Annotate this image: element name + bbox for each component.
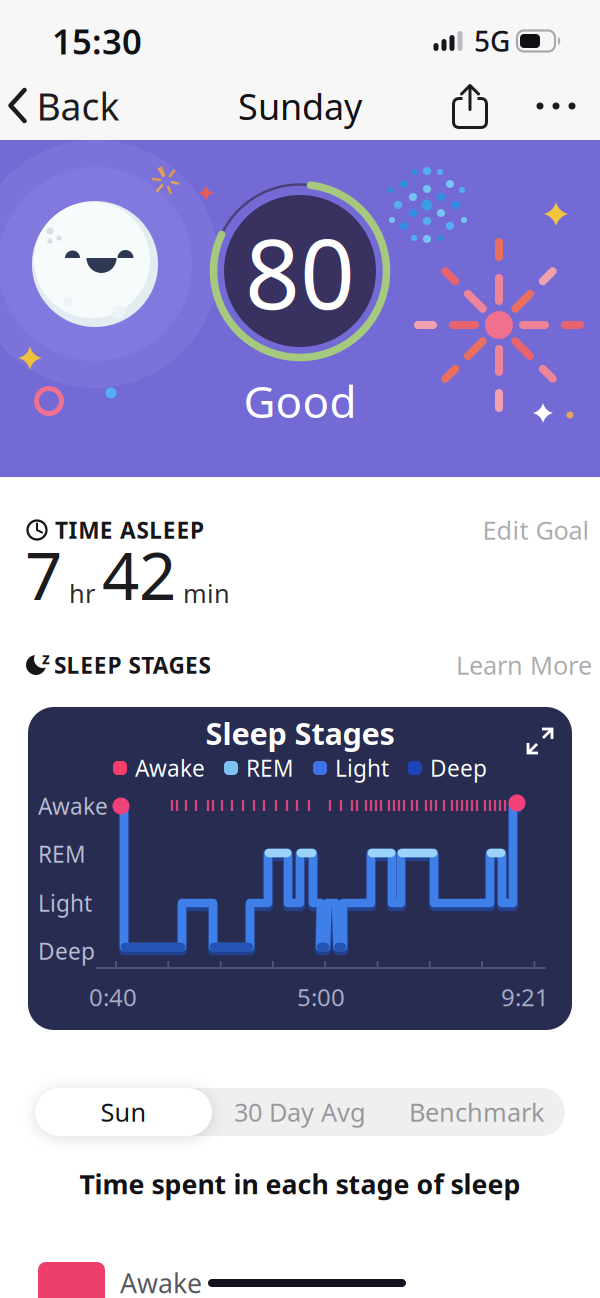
staticText: 9:21 — [501, 981, 549, 1013]
staticText: 80 — [245, 208, 355, 336]
staticText: Light — [38, 888, 92, 918]
staticText: hr — [69, 576, 95, 610]
button[interactable]: Benchmark — [388, 1088, 565, 1136]
staticText: min — [183, 576, 230, 610]
staticText: Sun — [100, 1095, 146, 1129]
button[interactable]: Back — [10, 81, 119, 131]
staticText: z — [42, 647, 50, 669]
staticText: Learn More — [456, 648, 592, 682]
staticText: Benchmark — [409, 1095, 545, 1129]
staticText: Sleep Stages — [205, 713, 394, 753]
button[interactable] — [536, 102, 575, 109]
staticText: 5:00 — [297, 981, 345, 1013]
staticText: 5G — [474, 22, 510, 60]
staticText: Deep — [430, 753, 487, 783]
staticText: Time spent in each stage of sleep — [79, 1166, 520, 1202]
button[interactable]: 30 Day Avg — [211, 1088, 388, 1136]
staticText: Edit Goal — [482, 513, 589, 547]
button[interactable] — [525, 726, 555, 756]
staticText: 42 — [102, 531, 176, 618]
button[interactable]: Edit Goal — [482, 513, 589, 547]
staticText: REM — [38, 839, 86, 869]
button[interactable] — [451, 84, 488, 129]
staticText: Sunday — [238, 82, 362, 130]
staticText: Good — [243, 372, 356, 430]
staticText: REM — [246, 753, 294, 783]
staticText: 7 — [25, 531, 62, 618]
staticText: TIME ASLEEP — [55, 515, 204, 545]
staticText: 0:40 — [89, 981, 137, 1013]
staticText: 30 Day Avg — [234, 1095, 366, 1129]
staticText: Awake — [120, 1265, 202, 1298]
staticText: Deep — [38, 936, 95, 966]
button[interactable]: Sun — [35, 1088, 212, 1136]
staticText: SLEEP STAGES — [54, 650, 211, 680]
staticText: Back — [36, 81, 119, 131]
staticText: Light — [335, 753, 389, 783]
button[interactable]: Learn More — [456, 648, 592, 682]
staticText: Awake — [38, 791, 108, 821]
staticText: 15:30 — [52, 18, 142, 64]
staticText: Awake — [135, 753, 205, 783]
